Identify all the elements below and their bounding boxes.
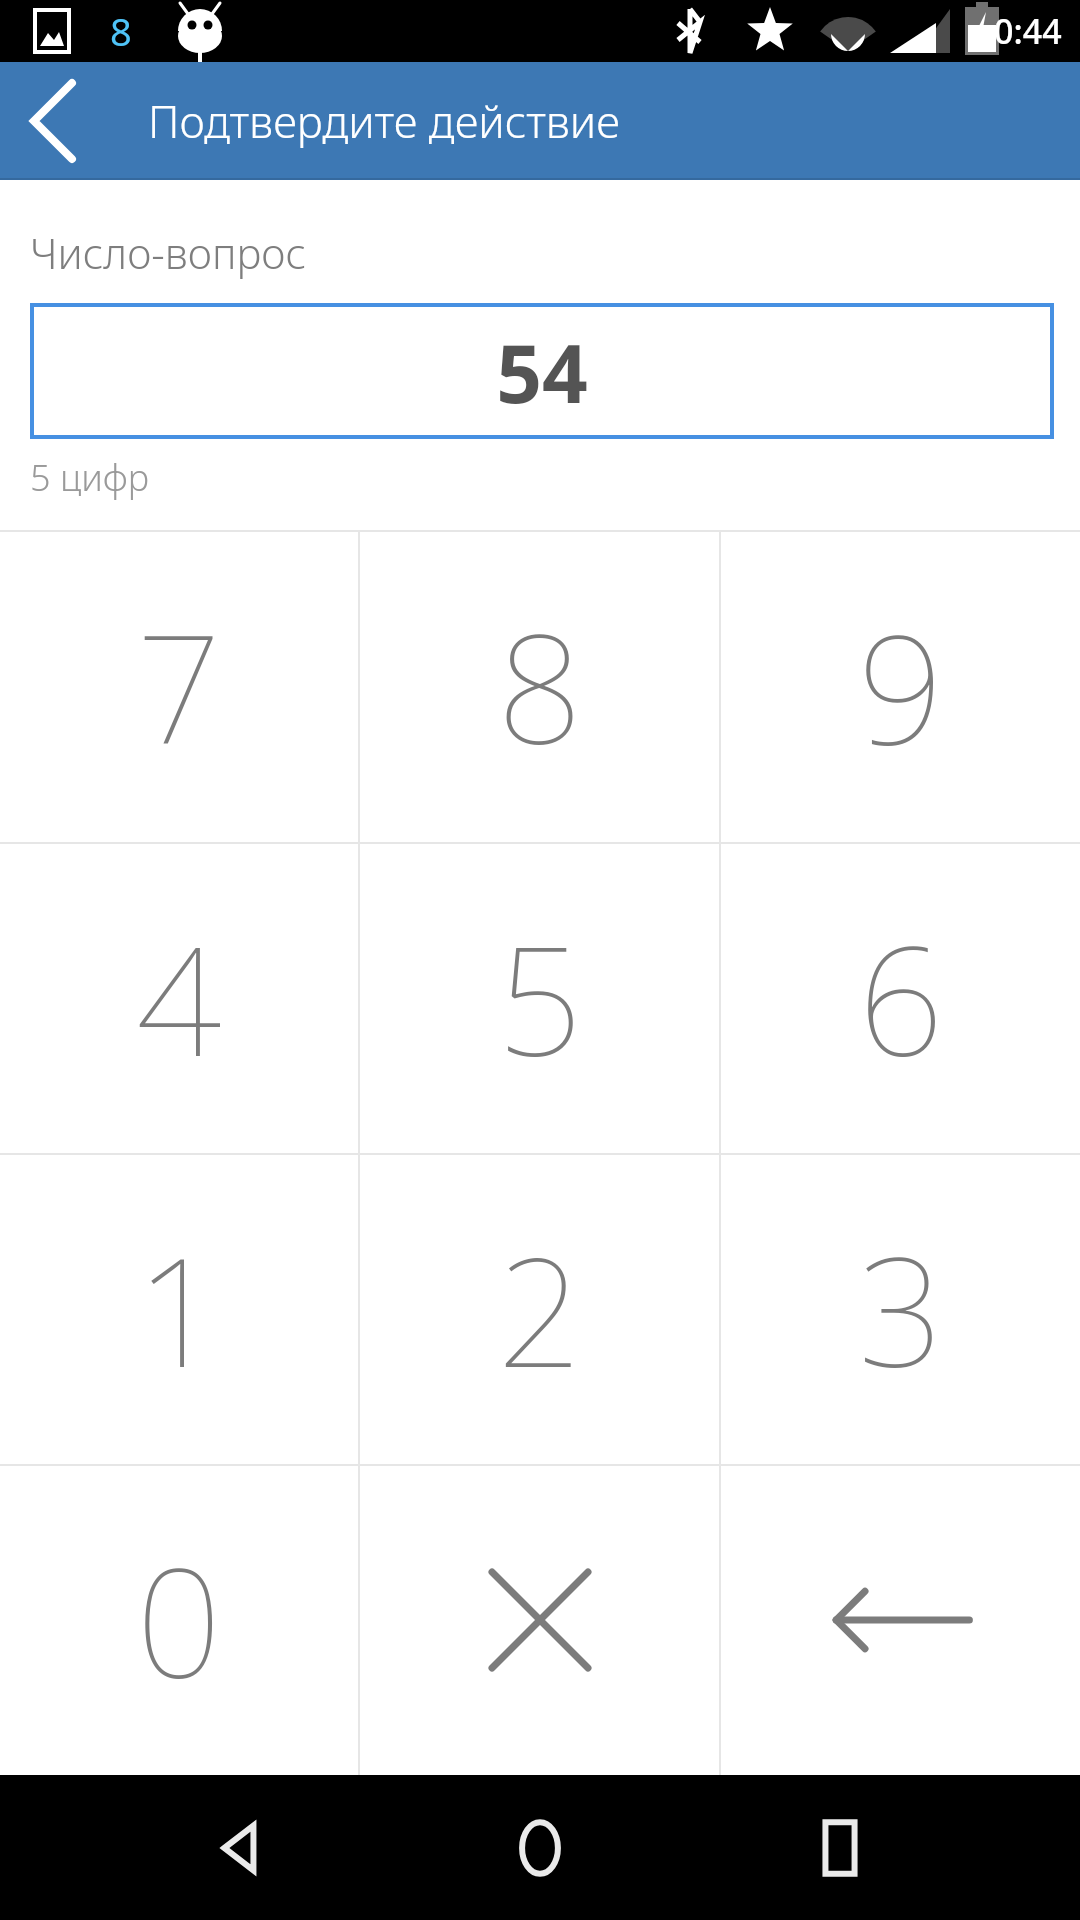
staticText: 9 bbox=[858, 584, 944, 788]
button[interactable]: Recents bbox=[780, 1788, 900, 1908]
staticText: 5 цифр bbox=[30, 453, 150, 502]
staticText: 6 bbox=[858, 896, 944, 1100]
button[interactable]: Back bbox=[180, 1788, 300, 1908]
button[interactable]: Home bbox=[480, 1788, 600, 1908]
staticText: 0:44 bbox=[994, 8, 1062, 54]
button[interactable]: 0 bbox=[0, 1464, 358, 1775]
staticText: 8 bbox=[497, 584, 583, 788]
button[interactable]: 6 bbox=[721, 842, 1080, 1153]
button[interactable]: Clear bbox=[360, 1464, 719, 1775]
staticText: 7 bbox=[136, 584, 222, 788]
button[interactable]: Back bbox=[0, 62, 118, 180]
button[interactable]: 1 bbox=[0, 1153, 358, 1464]
staticText: 8 bbox=[110, 5, 132, 57]
button[interactable]: 3 bbox=[721, 1153, 1080, 1464]
button[interactable]: 4 bbox=[0, 842, 358, 1153]
button[interactable]: 5 bbox=[360, 842, 719, 1153]
staticText: 5 bbox=[497, 896, 583, 1100]
button[interactable]: 9 bbox=[721, 530, 1080, 842]
staticText: 1 bbox=[136, 1207, 222, 1411]
button[interactable]: 54 bbox=[30, 303, 1054, 439]
staticText: 3 bbox=[858, 1207, 944, 1411]
button[interactable]: 7 bbox=[0, 530, 358, 842]
button[interactable]: 2 bbox=[360, 1153, 719, 1464]
button[interactable]: 8 bbox=[360, 530, 719, 842]
staticText: 4 bbox=[136, 896, 222, 1100]
staticText: 54 bbox=[496, 317, 588, 426]
staticText: 0 bbox=[136, 1518, 222, 1722]
button[interactable]: Backspace bbox=[721, 1464, 1080, 1775]
staticText: Подтвердите действие bbox=[148, 91, 620, 151]
staticText: Число-вопрос bbox=[30, 224, 307, 281]
staticText: 2 bbox=[497, 1207, 583, 1411]
